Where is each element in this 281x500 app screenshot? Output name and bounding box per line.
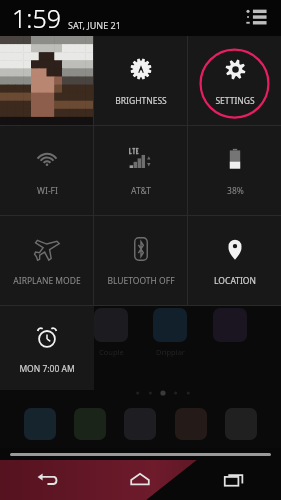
staticText: SETTINGS xyxy=(215,95,255,107)
button[interactable]: User profile xyxy=(0,36,93,125)
button[interactable]: AT&T xyxy=(94,126,187,215)
staticText: BRIGHTNESS xyxy=(115,95,167,107)
button[interactable]: Notifications list xyxy=(239,1,273,35)
staticText: WI-FI xyxy=(37,185,58,197)
button[interactable]: MON 7:00 AM xyxy=(0,306,94,390)
button[interactable]: AIRPLANE MODE xyxy=(0,216,93,305)
button[interactable]: BRIGHTNESS xyxy=(94,36,187,125)
button[interactable]: WI-FI xyxy=(0,126,93,215)
button[interactable]: Recents xyxy=(187,460,281,500)
staticText: 38% xyxy=(227,185,244,197)
staticText: LOCATION xyxy=(214,275,256,287)
staticText: SAT, JUNE 21 xyxy=(68,19,121,31)
staticText: BLUETOOTH OFF xyxy=(107,275,175,287)
button[interactable]: BLUETOOTH OFF xyxy=(94,216,187,305)
staticText: AIRPLANE MODE xyxy=(13,275,81,287)
button[interactable]: Back xyxy=(0,460,93,500)
staticText: AT&T xyxy=(131,185,151,197)
button[interactable]: LOCATION xyxy=(188,216,281,305)
staticText: MON 7:00 AM xyxy=(19,363,75,375)
staticText: 1:59 xyxy=(12,1,61,35)
button[interactable]: Collapse panel xyxy=(10,453,271,456)
button[interactable]: SETTINGS xyxy=(188,36,281,125)
staticText: Couple xyxy=(99,347,124,357)
staticText: Dripplar xyxy=(156,347,185,357)
button[interactable]: Home xyxy=(93,460,187,500)
staticText: Pocke xyxy=(41,347,62,357)
button[interactable]: 38% xyxy=(188,126,281,215)
